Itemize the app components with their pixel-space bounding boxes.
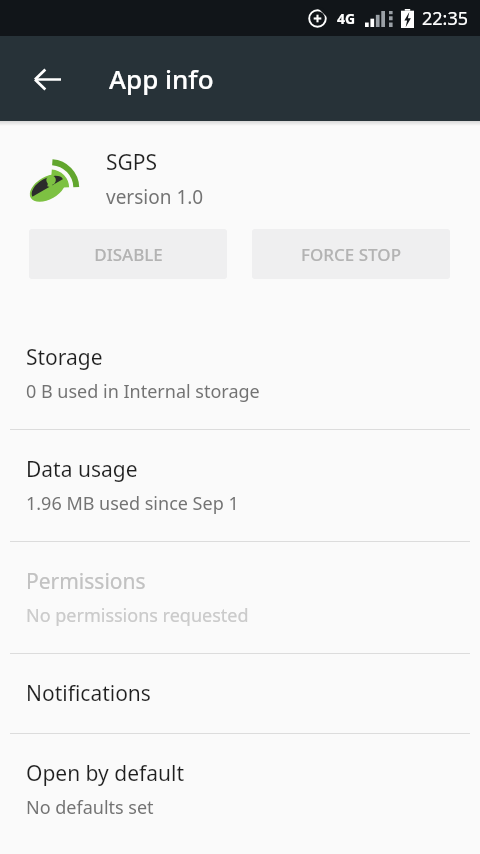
staticText: Open by default (26, 759, 185, 788)
staticText: 22:35 (422, 6, 469, 31)
button[interactable]: Data usage (0, 430, 480, 541)
staticText: App info (109, 61, 214, 96)
staticText: Storage (26, 343, 103, 372)
staticText: 1.96 MB used since Sep 1 (26, 491, 239, 516)
staticText: SGPS (106, 148, 158, 177)
staticText: No defaults set (26, 795, 154, 820)
button[interactable]: FORCE STOP (252, 229, 450, 279)
staticText: Data usage (26, 455, 138, 484)
button[interactable]: Back (22, 54, 72, 104)
staticText: 0 B used in Internal storage (26, 379, 260, 404)
button[interactable]: Storage (0, 318, 480, 429)
button[interactable]: DISABLE (29, 229, 227, 279)
staticText: version 1.0 (106, 184, 204, 210)
staticText: No permissions requested (26, 603, 249, 628)
staticText: Notifications (26, 679, 151, 708)
button[interactable]: Notifications (0, 654, 480, 733)
staticText: FORCE STOP (301, 243, 401, 266)
staticText: 4G (337, 9, 356, 28)
staticText: Permissions (26, 567, 146, 596)
button[interactable]: Open by default (0, 734, 480, 845)
button[interactable]: Permissions (0, 542, 480, 653)
staticText: DISABLE (94, 243, 163, 266)
